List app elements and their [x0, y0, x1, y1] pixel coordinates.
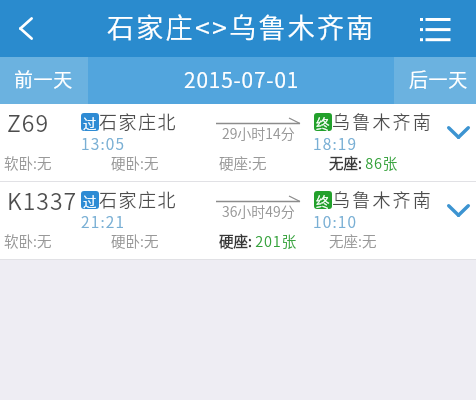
staticText: 29小时14分: [222, 123, 295, 143]
staticText: 过: [83, 191, 97, 209]
button[interactable]: 后一天: [394, 57, 476, 104]
staticText: 后一天: [409, 65, 468, 93]
staticText: 石家庄北: [99, 186, 177, 212]
staticText: 终: [316, 113, 330, 131]
staticText: 36小时49分: [222, 201, 295, 221]
staticText: 石家庄北: [99, 108, 177, 134]
staticText: Z69: [7, 105, 50, 138]
staticText: 21:21: [81, 210, 126, 232]
staticText: 硬座: 201张: [219, 230, 298, 251]
staticText: 无座: 86张: [329, 152, 399, 173]
staticText: 乌鲁木齐南: [332, 108, 433, 134]
button[interactable]: Expand: [436, 115, 476, 149]
button[interactable]: Menu: [420, 0, 476, 57]
staticText: K1337: [7, 183, 78, 216]
button[interactable]: Z69: [0, 104, 476, 181]
staticText: 终: [316, 191, 330, 209]
staticText: 软卧:无: [4, 230, 52, 251]
staticText: 18:19: [313, 132, 358, 154]
button[interactable]: K1337: [0, 182, 476, 259]
staticText: 2015-07-01: [184, 64, 300, 94]
button[interactable]: Back: [0, 0, 52, 57]
staticText: 过: [83, 113, 97, 131]
staticText: 前一天: [14, 65, 73, 93]
button[interactable]: Expand: [436, 193, 476, 227]
staticText: 13:05: [81, 132, 126, 154]
staticText: 乌鲁木齐南: [332, 186, 433, 212]
staticText: 石家庄<>乌鲁木齐南: [107, 7, 376, 46]
staticText: 软卧:无: [4, 152, 52, 173]
staticText: 硬卧:无: [111, 230, 159, 251]
staticText: 硬座:无: [219, 152, 267, 173]
button[interactable]: 前一天: [0, 57, 88, 104]
staticText: 无座:无: [329, 230, 377, 251]
staticText: 10:10: [313, 210, 358, 232]
staticText: 硬卧:无: [111, 152, 159, 173]
